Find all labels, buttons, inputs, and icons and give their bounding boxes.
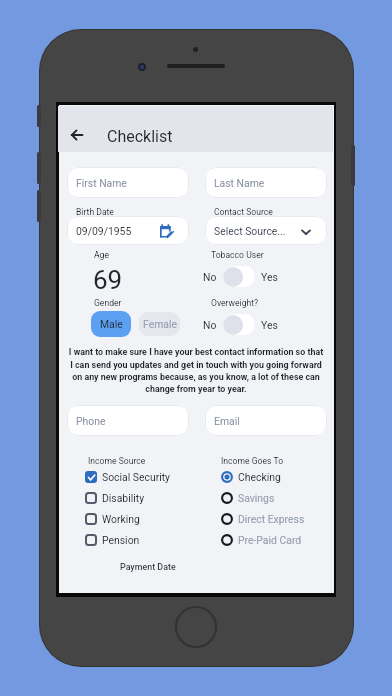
staticText: Payment Date [120, 562, 176, 572]
button[interactable] [223, 266, 255, 287]
staticText: First Name [76, 177, 127, 189]
staticText: Birth Date [76, 207, 114, 217]
button[interactable]: Checking [221, 468, 281, 485]
button[interactable]: Savings [221, 489, 275, 506]
button[interactable]: Male [91, 311, 131, 337]
button[interactable]: Pension [85, 531, 140, 548]
button[interactable]: Disability [85, 489, 145, 506]
staticText: 69 [93, 265, 123, 289]
button[interactable]: Last Name [205, 167, 327, 198]
staticText: Contact Source [214, 207, 273, 217]
staticText: Income Goes To [221, 456, 284, 466]
staticText: Yes [261, 319, 278, 331]
button[interactable]: Email [205, 405, 327, 436]
button[interactable]: Back [63, 121, 91, 149]
button[interactable]: Phone [67, 405, 189, 436]
staticText: Disability [102, 492, 145, 504]
staticText: Pre-Paid Card [238, 534, 302, 546]
button[interactable]: 09/09/1955 [67, 216, 189, 245]
staticText: Checking [238, 471, 281, 483]
staticText: Phone [76, 415, 106, 427]
staticText: Direct Express [238, 513, 305, 525]
staticText: Age [94, 250, 109, 260]
staticText: Select Source... [214, 225, 286, 237]
staticText: Yes [261, 271, 278, 283]
button[interactable]: Select Source... [205, 216, 327, 245]
staticText: Social Security [102, 471, 171, 483]
button[interactable] [223, 314, 255, 335]
button[interactable]: Direct Express [221, 510, 305, 527]
staticText: Gender [94, 298, 122, 308]
button[interactable]: Working [85, 510, 140, 527]
staticText: Income Source [88, 456, 146, 466]
button[interactable]: First Name [67, 167, 189, 198]
staticText: Working [102, 513, 140, 525]
staticText: Pension [102, 534, 140, 546]
staticText: I want to make sure I have your best con… [67, 347, 325, 394]
staticText: No [203, 271, 217, 283]
button[interactable]: Pre-Paid Card [221, 531, 302, 548]
staticText: 09/09/1955 [76, 225, 132, 237]
staticText: Checklist [107, 127, 173, 146]
staticText: Email [214, 415, 240, 427]
staticText: Tobacco User [211, 250, 264, 260]
staticText: Savings [238, 492, 275, 504]
staticText: No [203, 319, 217, 331]
staticText: Male [100, 318, 123, 330]
button[interactable]: Social Security [85, 468, 171, 485]
staticText: Female [143, 318, 177, 330]
staticText: Overweight? [211, 298, 259, 308]
button[interactable]: Female [139, 312, 180, 336]
staticText: Last Name [214, 177, 265, 189]
